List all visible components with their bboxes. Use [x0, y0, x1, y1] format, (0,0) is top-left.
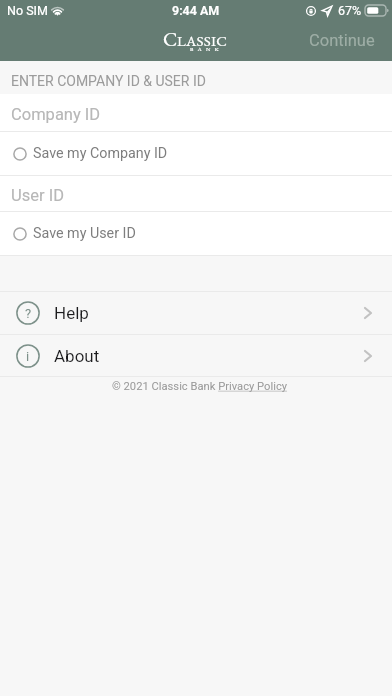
staticText: Save my User ID	[33, 225, 136, 242]
staticText: Save my Company ID	[33, 145, 168, 162]
button[interactable]: Save my Company ID	[0, 132, 392, 175]
staticText: LASSIC	[177, 31, 228, 51]
staticText: 67%	[338, 3, 362, 18]
staticText: i	[26, 349, 30, 364]
staticText: User ID	[11, 186, 64, 205]
staticText: C	[163, 26, 178, 52]
button[interactable]: ?	[0, 292, 392, 334]
button[interactable]: User ID	[0, 176, 392, 211]
button[interactable]: i	[0, 335, 392, 376]
staticText: About	[54, 346, 100, 366]
staticText: Continue	[309, 31, 375, 50]
staticText: 9:44 AM	[172, 3, 220, 18]
button[interactable]: Continue	[291, 24, 392, 55]
staticText: Help	[54, 303, 89, 323]
staticText: No SIM	[7, 3, 48, 18]
staticText: BANK	[190, 45, 224, 52]
staticText: ENTER COMPANY ID & USER ID	[11, 73, 206, 89]
button[interactable]: Save my User ID	[0, 212, 392, 255]
staticText: ?	[25, 306, 32, 321]
button[interactable]: Company ID	[0, 94, 392, 131]
staticText: Company ID	[11, 105, 101, 124]
staticText: © 2021 Classic Bank Privacy Policy	[112, 380, 288, 393]
